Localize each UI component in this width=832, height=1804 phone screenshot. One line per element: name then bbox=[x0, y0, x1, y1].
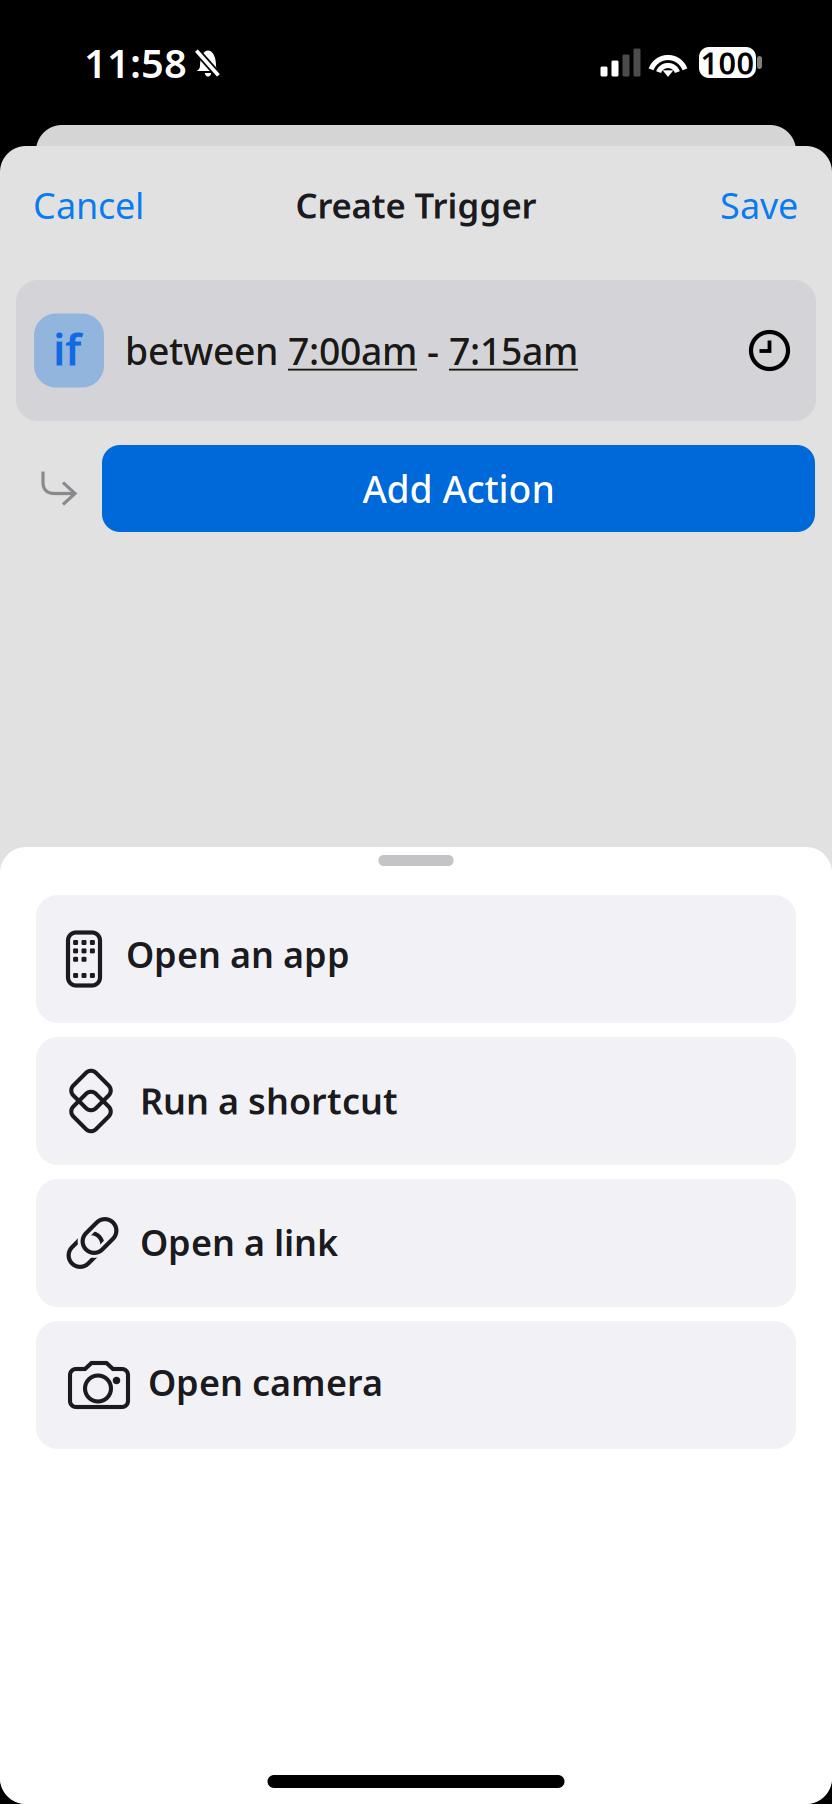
button[interactable]: Open camera bbox=[36, 1321, 796, 1449]
button[interactable]: Open an app bbox=[36, 895, 796, 1023]
staticText: Open an app bbox=[126, 930, 350, 978]
staticText: between 7:00am - 7:15am bbox=[125, 326, 578, 375]
button[interactable]: Choose time bbox=[751, 332, 788, 369]
staticText: Add Action bbox=[362, 464, 554, 513]
button[interactable]: Save bbox=[720, 181, 798, 229]
staticText: Save bbox=[720, 181, 798, 229]
staticText: 11:58 bbox=[84, 36, 187, 89]
staticText: Open a link bbox=[140, 1218, 338, 1266]
staticText: Create Trigger bbox=[295, 182, 536, 228]
button[interactable]: Run a shortcut bbox=[36, 1037, 796, 1165]
staticText: if bbox=[53, 319, 81, 378]
button[interactable]: Open a link bbox=[36, 1179, 796, 1307]
staticText: Open camera bbox=[148, 1358, 383, 1406]
button[interactable]: Add Action bbox=[102, 445, 815, 532]
button[interactable]: if bbox=[16, 280, 816, 421]
staticText: Run a shortcut bbox=[140, 1077, 398, 1124]
staticText: Cancel bbox=[33, 181, 144, 229]
button[interactable]: Cancel bbox=[33, 181, 144, 229]
staticText: 100 bbox=[700, 42, 754, 83]
